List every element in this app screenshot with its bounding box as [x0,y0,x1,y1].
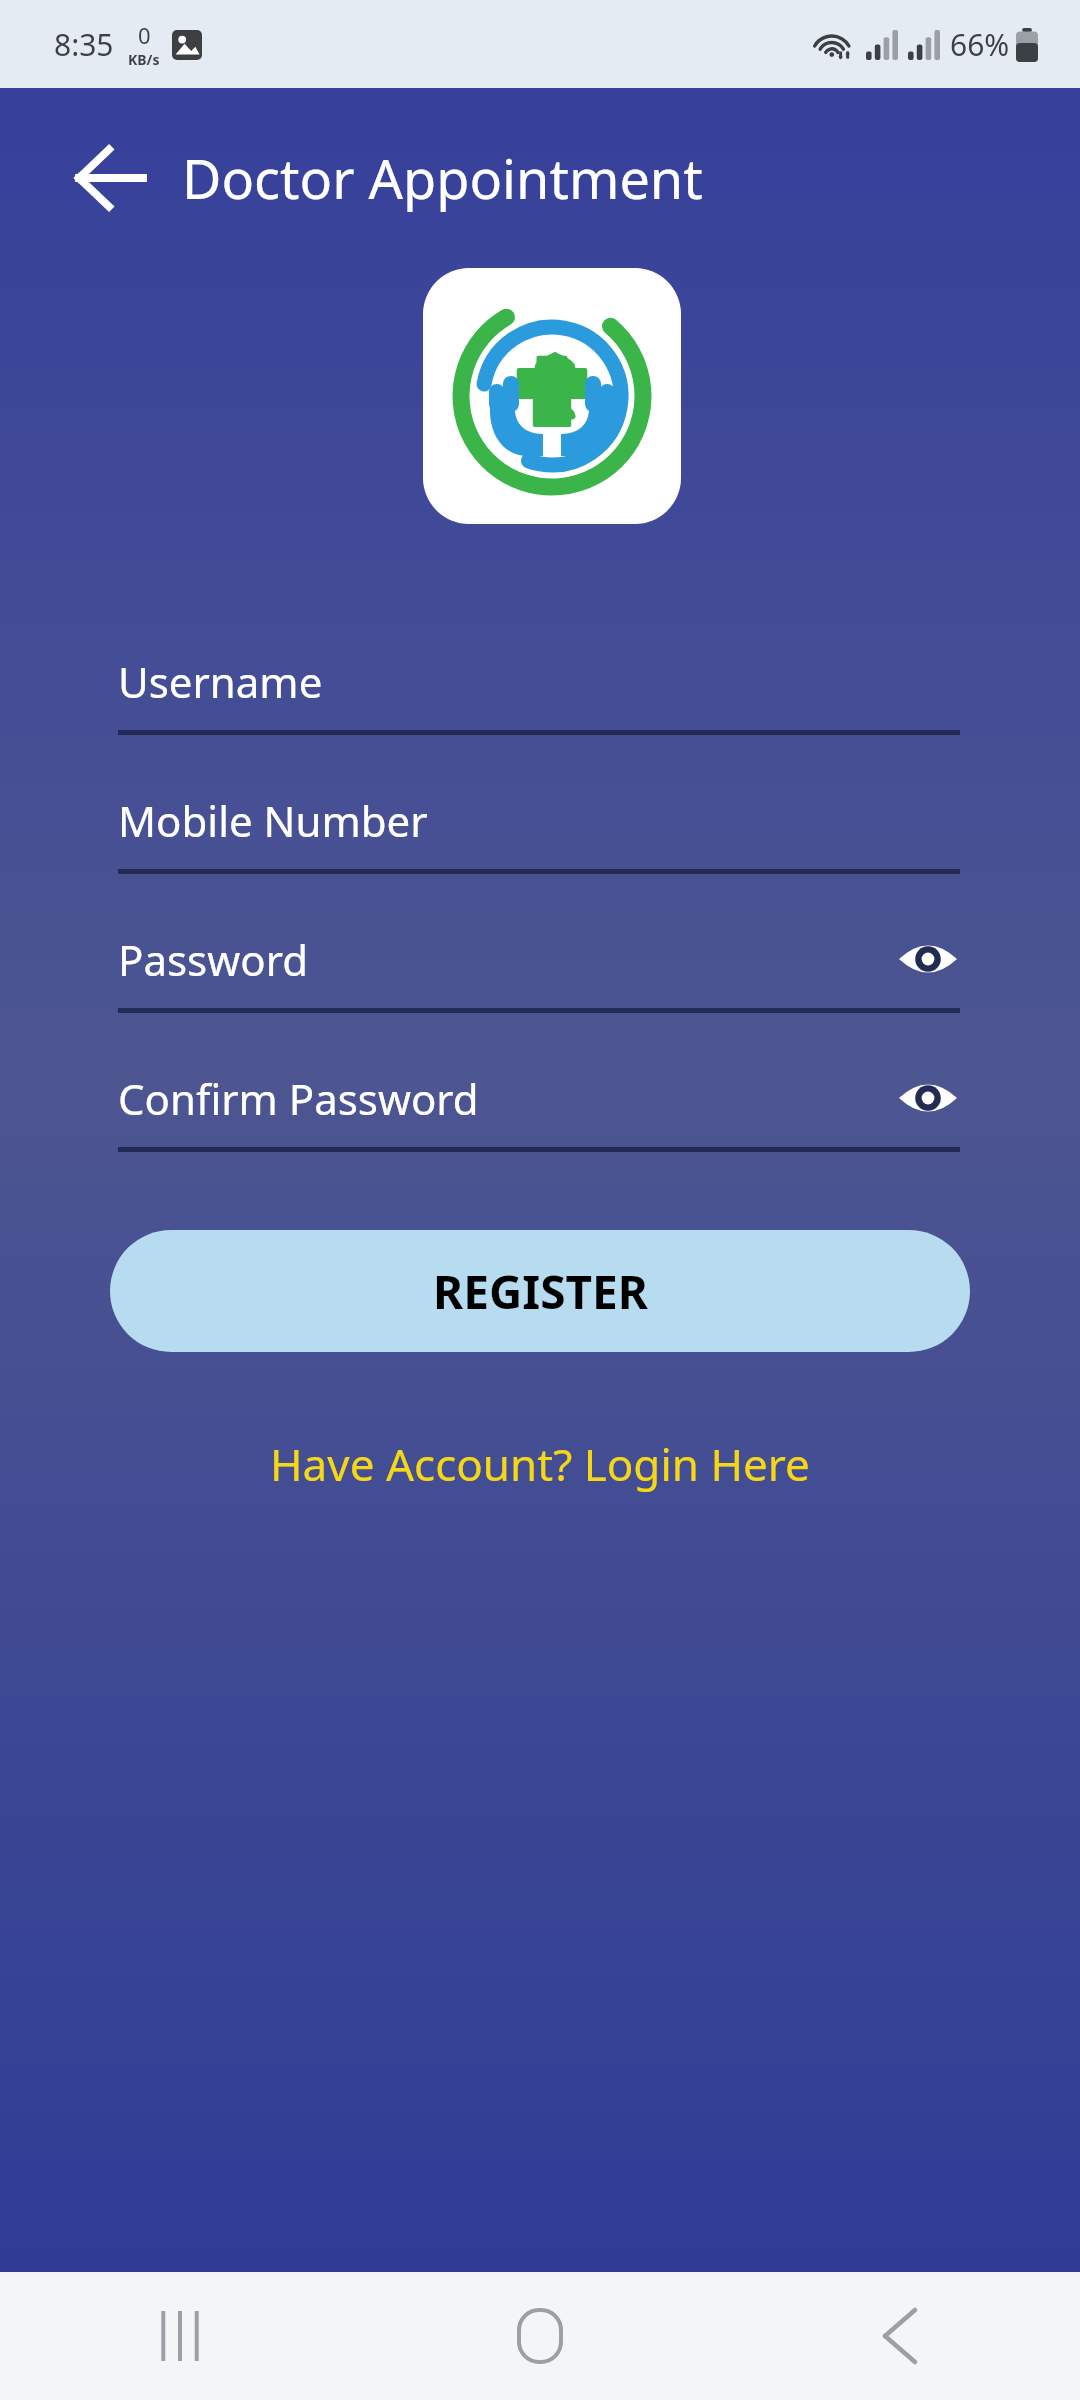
button[interactable]: Back [62,131,156,225]
staticText: 0 [138,20,151,50]
staticText: Confirm Password [118,1070,479,1127]
button[interactable]: Password [118,922,960,1013]
staticText: KB/s [128,50,160,69]
staticText: Username [118,653,323,710]
button[interactable]: Mobile Number [118,783,960,874]
button[interactable]: Have Account? Login Here [0,1434,1080,1494]
staticText: 8:35 [54,24,114,65]
staticText: Password [118,931,308,988]
staticText: Mobile Number [118,792,428,849]
button[interactable]: Toggle password visibility [896,1074,960,1122]
staticText: Have Account? Login Here [270,1434,810,1494]
staticText: Doctor Appointment [182,141,703,215]
button[interactable]: Username [118,644,960,735]
staticText: REGISTER [433,1260,648,1323]
button[interactable]: Toggle password visibility [896,935,960,983]
button[interactable]: REGISTER [110,1230,970,1352]
button[interactable]: Recent apps [0,2272,360,2400]
staticText: 66% [950,24,1010,65]
button[interactable]: Back [720,2272,1080,2400]
button[interactable]: Home [360,2272,720,2400]
button[interactable]: Confirm Password [118,1061,960,1152]
